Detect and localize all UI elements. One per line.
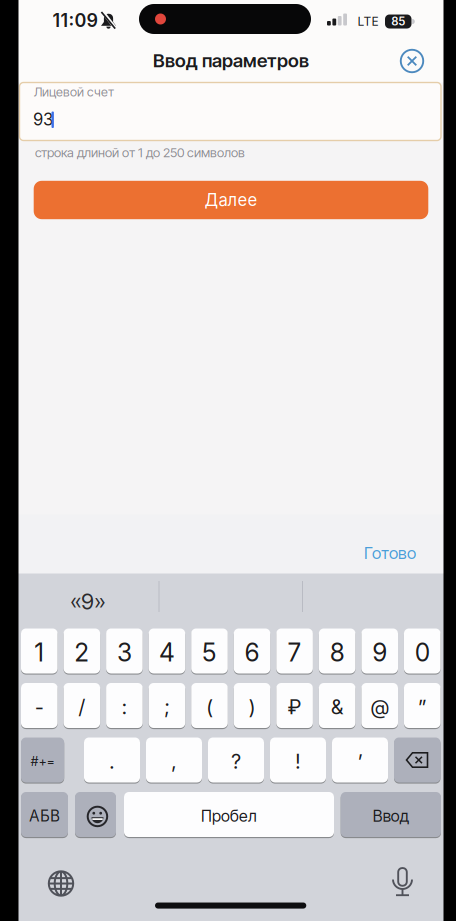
staticText: Ввод параметров [153, 49, 309, 72]
staticText: Ввод [373, 806, 409, 826]
staticText: #+= [31, 754, 55, 769]
button[interactable]: ” [404, 683, 440, 728]
button[interactable]: 4 [149, 628, 185, 673]
button[interactable]: Готово [296, 540, 416, 566]
staticText: ! [295, 749, 301, 774]
button[interactable]: ; [149, 683, 185, 728]
staticText: ) [249, 695, 256, 719]
button[interactable]: Пробел [124, 792, 334, 837]
staticText: 9 [372, 638, 387, 667]
staticText: ’ [357, 749, 362, 774]
button[interactable]: ’ [332, 737, 388, 782]
staticText: . [109, 749, 115, 774]
staticText: ? [231, 749, 241, 774]
button[interactable]: 7 [276, 628, 313, 673]
staticText: 2 [74, 638, 89, 667]
button[interactable]: ₽ [276, 683, 313, 728]
staticText: ” [418, 695, 427, 719]
staticText: 3 [117, 638, 132, 667]
staticText: , [171, 749, 177, 774]
staticText: ₽ [288, 695, 302, 719]
button[interactable]: Далее [34, 181, 428, 219]
staticText: 93 [33, 109, 53, 130]
button[interactable] [75, 792, 116, 837]
staticText: 1 [34, 638, 44, 667]
button[interactable]: : [106, 683, 143, 728]
staticText: 8 [330, 638, 345, 667]
button[interactable]: ( [191, 683, 228, 728]
button[interactable]: Ввод [341, 792, 441, 837]
staticText: АБВ [29, 807, 60, 825]
button[interactable]: ) [234, 683, 270, 728]
button[interactable]: , [146, 737, 202, 782]
button[interactable]: . [84, 737, 140, 782]
button[interactable]: 5 [191, 628, 228, 673]
button[interactable] [387, 868, 417, 897]
staticText: LTE [357, 14, 378, 29]
staticText: Пробел [201, 806, 257, 826]
staticText: / [78, 695, 85, 719]
staticText: 0 [415, 638, 430, 667]
button[interactable] [48, 870, 74, 896]
button[interactable] [396, 45, 428, 77]
button[interactable]: ! [270, 737, 326, 782]
button[interactable]: / [63, 683, 100, 728]
button[interactable]: & [319, 683, 355, 728]
staticText: ; [164, 695, 170, 719]
staticText: «9» [70, 588, 105, 615]
staticText: строка длиной от 1 до 250 символов [35, 145, 245, 160]
staticText: 85 [391, 15, 405, 28]
staticText: 5 [202, 638, 217, 667]
button[interactable]: 0 [404, 628, 440, 673]
staticText: Лицевой счет [34, 84, 114, 100]
button[interactable]: @ [361, 683, 398, 728]
button[interactable]: АБВ [21, 792, 68, 837]
staticText: 6 [245, 638, 260, 667]
staticText: & [331, 695, 344, 719]
button[interactable]: - [21, 683, 58, 728]
staticText: 4 [159, 638, 175, 667]
staticText: @ [370, 695, 389, 719]
button[interactable]: 9 [361, 628, 398, 673]
staticText: Готово [364, 543, 416, 563]
button[interactable]: 1 [21, 628, 58, 673]
staticText: ( [206, 695, 213, 719]
staticText: - [35, 695, 44, 719]
button[interactable]: 3 [106, 628, 143, 673]
button[interactable] [19, 82, 441, 140]
button[interactable]: ? [208, 737, 264, 782]
button[interactable] [394, 737, 440, 782]
button[interactable]: 2 [63, 628, 100, 673]
staticText: Далее [204, 190, 257, 210]
button[interactable]: 8 [319, 628, 355, 673]
button[interactable]: 6 [234, 628, 270, 673]
staticText: : [121, 695, 127, 719]
staticText: 11:09 [53, 10, 99, 31]
staticText: 7 [288, 638, 302, 667]
button[interactable]: #+= [21, 737, 64, 782]
